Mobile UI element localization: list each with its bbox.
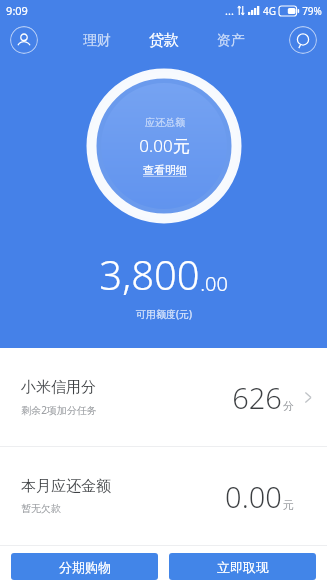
staticText: 暂无欠款 <box>21 502 61 515</box>
button[interactable]: 查看明细 <box>143 163 187 177</box>
staticText: 3,800 <box>99 247 200 301</box>
button[interactable]: 贷款 <box>147 25 181 56</box>
staticText: 查看明细 <box>143 163 187 177</box>
staticText: 分 <box>283 399 294 413</box>
staticText: .00 <box>200 270 228 297</box>
staticText: 0.00元 <box>139 134 190 157</box>
button[interactable]: Profile <box>10 26 38 54</box>
staticText: 9:09 <box>6 3 28 18</box>
staticText: 元 <box>283 498 294 512</box>
staticText: 小米信用分 <box>21 378 96 397</box>
button[interactable]: 理财 <box>81 26 113 56</box>
staticText: ... <box>225 3 234 18</box>
staticText: 分期购物 <box>59 559 111 575</box>
staticText: 626 <box>232 378 282 417</box>
staticText: 应还总额 <box>145 116 185 129</box>
button[interactable]: 立即取现 <box>169 553 316 580</box>
staticText: 贷款 <box>149 31 179 50</box>
staticText: 可用额度(元) <box>136 307 192 321</box>
staticText: 资产 <box>217 32 245 50</box>
staticText: 立即取现 <box>217 559 269 575</box>
staticText: 本月应还金额 <box>21 477 111 496</box>
button[interactable]: 资产 <box>215 26 247 56</box>
staticText: 剩余2项加分任务 <box>21 403 97 417</box>
button[interactable]: 小米信用分 <box>0 348 327 446</box>
staticText: 4G <box>263 4 276 18</box>
button[interactable]: Messages <box>289 26 317 54</box>
button[interactable]: 本月应还金额 <box>0 447 327 545</box>
staticText: 0.00 <box>225 477 282 516</box>
button[interactable]: 分期购物 <box>11 553 158 580</box>
staticText: 79% <box>302 4 322 18</box>
staticText: 理财 <box>83 32 111 50</box>
